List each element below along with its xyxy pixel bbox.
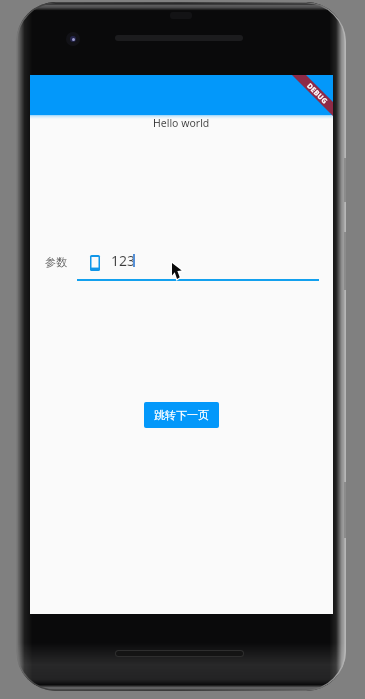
- other: Phone: [90, 255, 100, 271]
- staticText: Hello world: [153, 116, 210, 130]
- staticText: 跳转下一页: [154, 408, 209, 422]
- staticText: 123: [111, 251, 136, 270]
- button[interactable]: 跳转下一页: [144, 402, 219, 428]
- staticText: DEBUG: [304, 81, 330, 107]
- staticText: 参数: [45, 255, 67, 269]
